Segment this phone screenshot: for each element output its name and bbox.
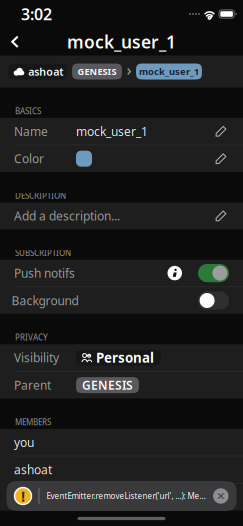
staticText: Parent (14, 377, 51, 393)
staticText: ashoat (28, 64, 63, 79)
button[interactable]: Background (198, 291, 229, 310)
staticText: Push notifs (14, 265, 75, 281)
staticText: Name (14, 123, 48, 139)
button[interactable]: Edit (213, 145, 229, 172)
button[interactable]: Info (167, 266, 198, 280)
staticText: mock_user_1 (67, 30, 176, 53)
button[interactable]: Personal (76, 350, 161, 366)
staticText: Visibility (14, 350, 59, 366)
button[interactable]: mock_user_1 (136, 63, 202, 79)
staticText: GENESIS (82, 377, 133, 393)
staticText: Color (14, 151, 44, 167)
staticText: ashoat (14, 462, 52, 478)
staticText: ! (21, 486, 25, 506)
staticText: Personal (96, 349, 154, 366)
staticText: Background (11, 292, 78, 308)
staticText: PRIVACY (15, 332, 48, 343)
staticText: GENESIS (77, 65, 116, 78)
staticText: SUBSCRIPTION (15, 248, 71, 258)
button[interactable]: Edit (213, 118, 229, 145)
staticText: DESCRIPTION (15, 190, 66, 201)
staticText: 3:02 (21, 3, 52, 25)
staticText: MEMBERS (15, 417, 51, 427)
staticText: mock_user_1 (76, 123, 148, 139)
staticText: BASICS (15, 106, 41, 116)
button[interactable]: Push notifications (198, 264, 229, 282)
staticText: mock_user_1 (139, 65, 199, 78)
staticText: parent admin (14, 489, 89, 505)
button[interactable]: Dismiss (213, 488, 228, 504)
button[interactable]: GENESIS (72, 63, 122, 79)
button[interactable]: GENESIS (76, 377, 139, 393)
button[interactable]: ashoat (8, 63, 67, 79)
staticText: EventEmitter.removeListener('url', ...):… (46, 491, 205, 501)
staticText: you (14, 434, 34, 450)
button[interactable]: Edit (213, 202, 229, 229)
staticText: Add a description... (14, 208, 120, 224)
button[interactable]: Back (2, 28, 28, 55)
